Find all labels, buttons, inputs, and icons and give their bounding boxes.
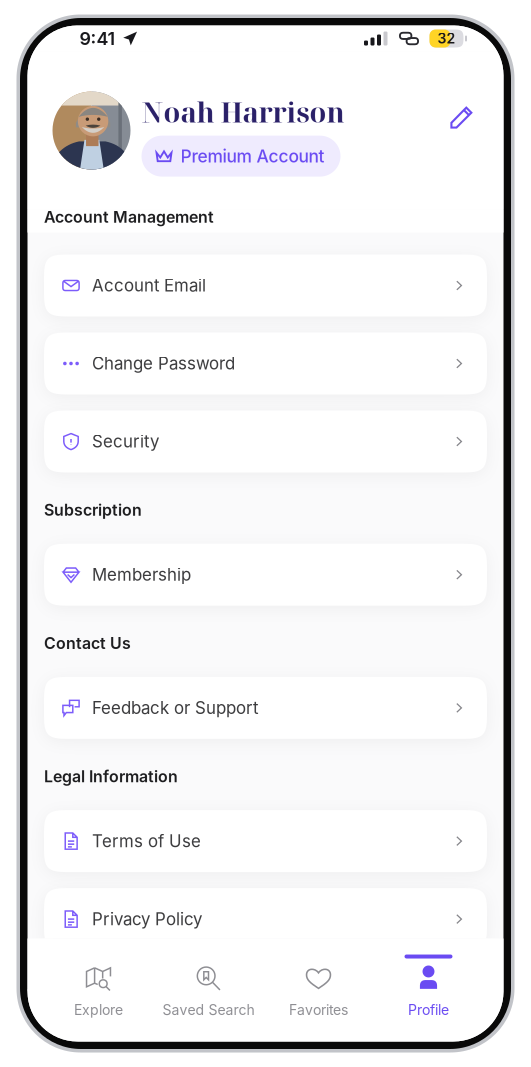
staticText: Change Password (92, 353, 235, 374)
staticText: Explore (74, 1001, 123, 1018)
staticText: Account Email (92, 275, 206, 296)
button[interactable]: Privacy Policy (44, 888, 487, 950)
staticText: 32 (437, 30, 455, 47)
staticText: Saved Search (162, 1001, 254, 1018)
button[interactable]: Terms of Use (44, 810, 487, 872)
button[interactable]: Account Email (44, 254, 487, 316)
button[interactable]: Edit profile (439, 95, 483, 139)
staticText: Premium Account (180, 146, 324, 167)
staticText: Account Management (44, 207, 214, 227)
button[interactable]: Membership (44, 544, 487, 606)
staticText: Contact Us (44, 634, 131, 653)
button[interactable]: Feedback or Support (44, 677, 487, 739)
button[interactable]: Saved Search (153, 938, 263, 1041)
staticText: Profile (408, 1001, 449, 1018)
button[interactable]: Explore (43, 938, 153, 1041)
staticText: Subscription (44, 500, 142, 520)
staticText: Terms of Use (92, 831, 201, 851)
staticText: Noah Harrison (141, 93, 344, 131)
staticText: Favorites (289, 1001, 348, 1018)
staticText: Legal Information (44, 767, 178, 786)
staticText: Security (92, 431, 159, 452)
staticText: 9:41 (79, 28, 115, 49)
staticText: Feedback or Support (92, 698, 258, 718)
button[interactable]: Profile (373, 938, 483, 1041)
button[interactable]: Favorites (263, 938, 373, 1041)
button[interactable]: Security (44, 410, 487, 472)
button[interactable]: Change Password (44, 332, 487, 394)
staticText: Privacy Policy (92, 909, 202, 929)
staticText: Membership (92, 564, 191, 585)
